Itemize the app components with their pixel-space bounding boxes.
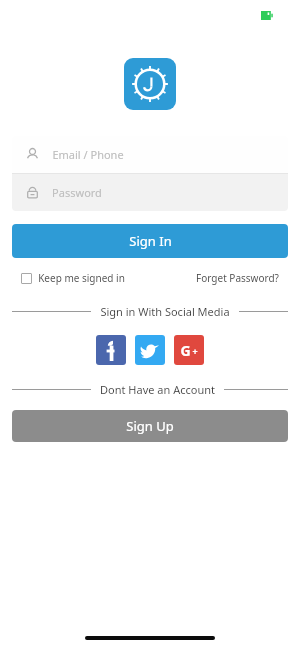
button[interactable]: Keep me signed in: [21, 271, 125, 285]
staticText: Forget Password?: [196, 271, 279, 285]
staticText: Sign in With Social Media: [100, 304, 230, 319]
button[interactable]: Sign in with Twitter: [135, 335, 165, 365]
button[interactable]: Sign In: [12, 224, 288, 258]
staticText: Password: [52, 185, 102, 200]
button[interactable]: Password: [12, 174, 288, 211]
staticText: Dont Have an Account: [100, 382, 215, 397]
staticText: G: [180, 341, 191, 360]
staticText: +: [192, 345, 198, 357]
staticText: Sign Up: [126, 417, 174, 435]
staticText: Keep me signed in: [38, 271, 125, 285]
button[interactable]: App logo: [124, 58, 176, 110]
button[interactable]: Sign Up: [12, 410, 288, 442]
button[interactable]: Email or phone: [12, 136, 288, 173]
staticText: Email / Phone: [52, 147, 124, 162]
button[interactable]: Sign in with Facebook: [96, 335, 126, 365]
button[interactable]: Forget Password?: [196, 271, 279, 285]
button[interactable]: Sign in with Google Plus: [174, 335, 204, 365]
staticText: Sign In: [129, 232, 172, 250]
